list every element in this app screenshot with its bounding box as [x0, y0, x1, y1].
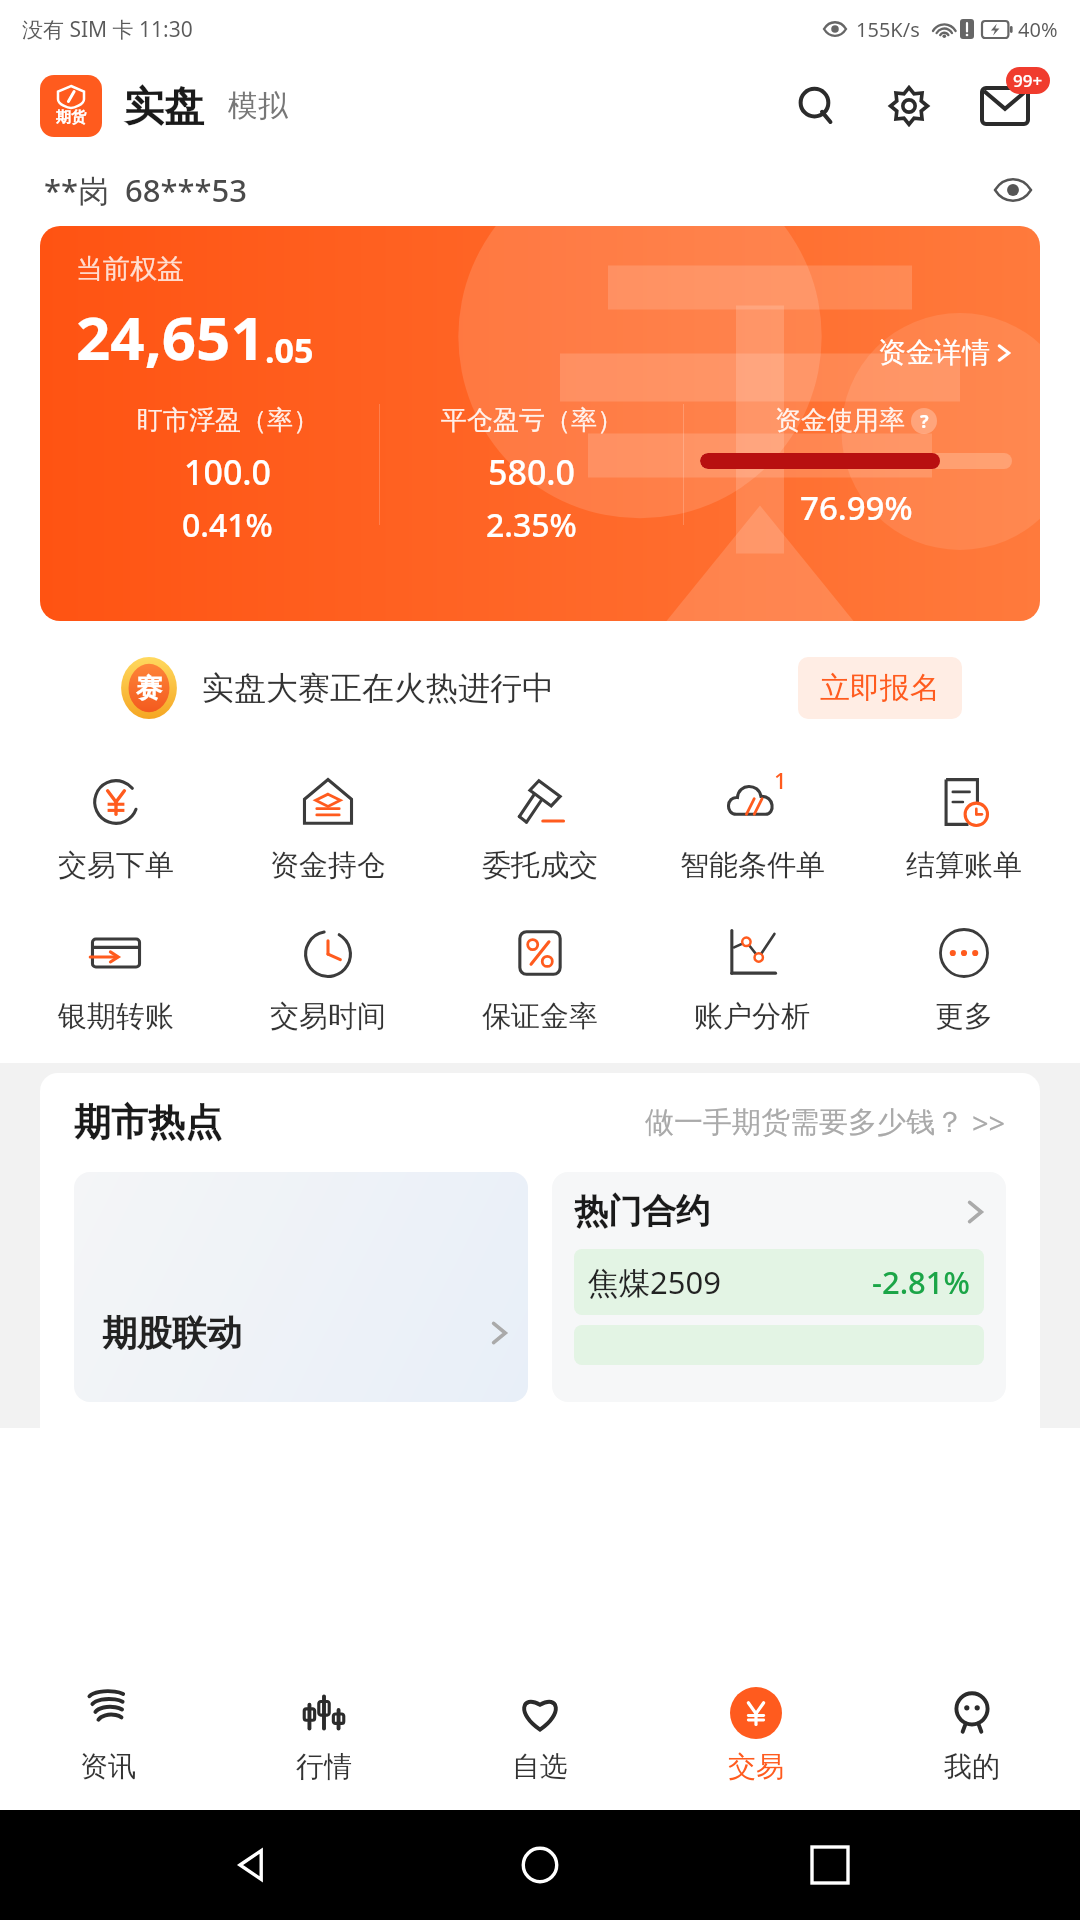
button[interactable]: 立即报名	[798, 657, 962, 719]
staticText: 做一手期货需要多少钱？	[645, 1104, 964, 1141]
button[interactable]: 结算账单	[858, 761, 1070, 894]
staticText: 结算账单	[906, 847, 1022, 884]
button[interactable]: 模拟	[228, 87, 288, 125]
staticText: 智能条件单	[680, 847, 825, 884]
staticText: 580.0	[488, 449, 576, 495]
button[interactable]: 资金持仓	[222, 761, 434, 894]
button[interactable]: 主页	[500, 1825, 580, 1905]
button[interactable]: 自选	[432, 1660, 648, 1810]
staticText: 赛	[136, 672, 162, 705]
staticText: 76.99%	[800, 485, 913, 530]
staticText: 期市热点	[74, 1099, 222, 1146]
staticText: 2.35%	[486, 503, 577, 547]
staticText: 期货	[56, 108, 86, 127]
staticText: 1	[774, 765, 787, 795]
button[interactable]: 当前权益	[40, 226, 1040, 621]
staticText: >>	[972, 1103, 1006, 1142]
button[interactable]: 资讯	[0, 1660, 216, 1810]
button[interactable]: 返回	[210, 1825, 290, 1905]
staticText: 我的	[944, 1749, 1000, 1784]
staticText: .05	[265, 327, 314, 373]
button[interactable]: 交易下单	[10, 761, 222, 894]
button[interactable]: 更多	[858, 912, 1070, 1045]
button[interactable]: 交易时间	[222, 912, 434, 1045]
staticText: 账户分析	[694, 998, 810, 1035]
button[interactable]: 期货	[40, 75, 102, 137]
staticText: 模拟	[228, 87, 288, 125]
button[interactable]: 1	[646, 761, 858, 894]
button[interactable]: 显示隐藏金额	[990, 167, 1036, 213]
staticText: 24,651	[76, 296, 265, 378]
staticText: 立即报名	[820, 669, 940, 707]
staticText: 期股联动	[102, 1311, 242, 1355]
button[interactable]: **岗 68***53	[44, 169, 247, 211]
staticText: 资讯	[80, 1749, 136, 1784]
button[interactable]: 资金详情	[878, 335, 1012, 370]
staticText: 更多	[935, 998, 993, 1035]
button[interactable]: 银期转账	[10, 912, 222, 1045]
staticText: 155K/s	[856, 16, 920, 43]
staticText: 40%	[1018, 16, 1058, 43]
staticText: 银期转账	[58, 998, 174, 1035]
staticText: 保证金率	[482, 998, 598, 1035]
staticText: 盯市浮盈（率）	[137, 404, 319, 437]
staticText: 交易	[728, 1749, 784, 1784]
button[interactable]: 交易	[648, 1660, 864, 1810]
staticText: 交易时间	[270, 998, 386, 1035]
button[interactable]: 赛	[88, 629, 992, 747]
staticText: 平仓盈亏（率）	[441, 404, 623, 437]
button[interactable]: 期股联动	[74, 1172, 528, 1402]
button[interactable]: 消息	[970, 71, 1040, 141]
button[interactable]: 行情	[216, 1660, 432, 1810]
button[interactable]: 说明	[911, 408, 937, 434]
button[interactable]: 搜索	[786, 75, 848, 137]
button[interactable]: 账户分析	[646, 912, 858, 1045]
staticText: **岗 68***53	[44, 169, 247, 211]
staticText: -2.81%	[872, 1261, 970, 1303]
staticText: 100.0	[184, 449, 272, 495]
staticText: 交易下单	[58, 847, 174, 884]
staticText: 资金持仓	[270, 847, 386, 884]
staticText: 资金详情	[878, 335, 990, 370]
button[interactable]: 做一手期货需要多少钱？	[645, 1103, 1006, 1142]
button[interactable]: 设置	[878, 75, 940, 137]
staticText: 没有 SIM 卡 11:30	[22, 15, 193, 44]
button[interactable]: 委托成交	[434, 761, 646, 894]
button[interactable]: 最近任务	[790, 1825, 870, 1905]
button[interactable]: 实盘	[124, 81, 204, 131]
button[interactable]: 保证金率	[434, 912, 646, 1045]
staticText: 委托成交	[482, 847, 598, 884]
staticText: 热门合约	[574, 1190, 710, 1233]
button[interactable]: 我的	[864, 1660, 1080, 1810]
staticText: 0.41%	[182, 503, 273, 547]
staticText: 行情	[296, 1749, 352, 1784]
button[interactable]: 热门合约	[552, 1172, 1006, 1402]
staticText: 资金使用率	[775, 404, 905, 437]
staticText: 自选	[512, 1749, 568, 1784]
staticText: 实盘	[124, 81, 204, 131]
staticText: 99+	[1013, 69, 1043, 92]
staticText: ?	[920, 409, 929, 434]
staticText: 实盘大赛正在火热进行中	[202, 668, 554, 708]
staticText: 焦煤2509	[588, 1261, 721, 1303]
staticText: 当前权益	[76, 252, 184, 286]
